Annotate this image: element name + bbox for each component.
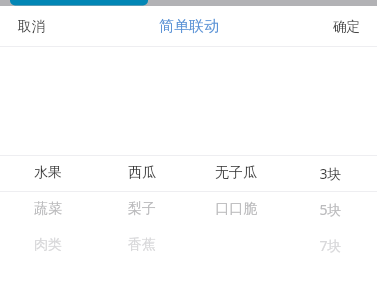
- button[interactable]: 蔬菜: [0, 191, 95, 227]
- button[interactable]: 确定: [321, 10, 377, 43]
- button[interactable]: 取消: [0, 10, 57, 43]
- button[interactable]: 肉类: [0, 227, 95, 263]
- staticText: 梨子: [128, 200, 156, 218]
- button[interactable]: 口口脆: [189, 191, 283, 227]
- button[interactable]: 香蕉: [95, 227, 189, 263]
- button[interactable]: 西瓜: [95, 155, 189, 191]
- staticText: 5块: [319, 200, 342, 219]
- staticText: 香蕉: [128, 236, 156, 254]
- button[interactable]: 3块: [283, 155, 377, 191]
- staticText: 蔬菜: [34, 200, 62, 218]
- button[interactable]: 无子瓜: [189, 155, 283, 191]
- button[interactable]: 梨子: [95, 191, 189, 227]
- button[interactable]: 7块: [283, 227, 377, 263]
- staticText: 简单联动: [159, 17, 219, 36]
- staticText: 口口脆: [215, 200, 257, 218]
- staticText: 水果: [34, 164, 62, 182]
- staticText: 取消: [18, 18, 45, 35]
- button[interactable]: 简单联动: [153, 13, 225, 40]
- staticText: 西瓜: [128, 164, 156, 182]
- staticText: 无子瓜: [215, 164, 257, 182]
- staticText: 肉类: [34, 236, 62, 254]
- staticText: 3块: [319, 164, 342, 183]
- button[interactable]: 5块: [283, 191, 377, 227]
- button[interactable]: 水果: [0, 155, 95, 191]
- staticText: 确定: [333, 18, 360, 35]
- staticText: 7块: [319, 236, 342, 255]
